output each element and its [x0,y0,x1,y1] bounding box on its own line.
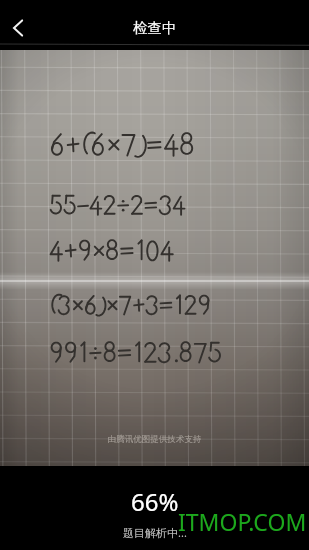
staticText: 66% [131,485,179,518]
staticText: 由腾讯优图提供技术支持 [0,434,309,445]
staticText: 检查中 [133,19,177,37]
staticText: ITMOP.COM [178,506,307,537]
button[interactable]: Back [2,9,40,47]
staticText: 题目解析中... [123,525,187,540]
